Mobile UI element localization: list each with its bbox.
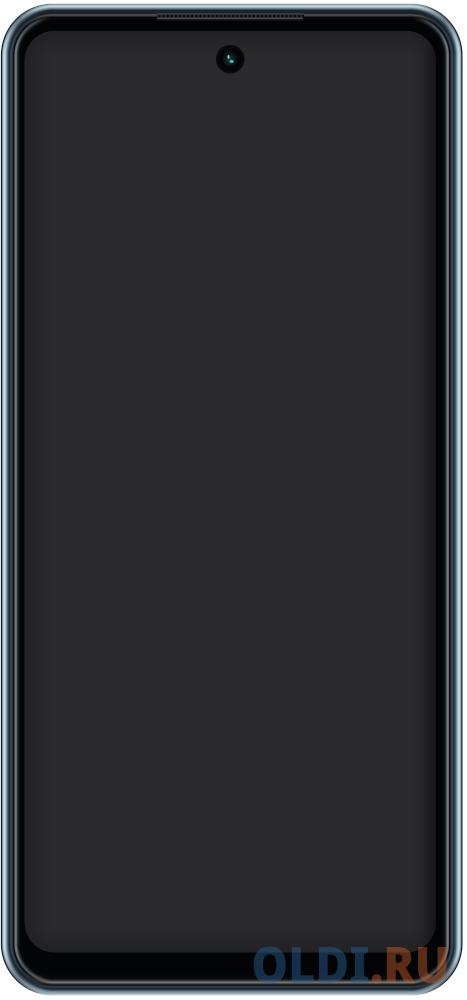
button[interactable]: Smartphone front view product photo [0,0,467,1000]
